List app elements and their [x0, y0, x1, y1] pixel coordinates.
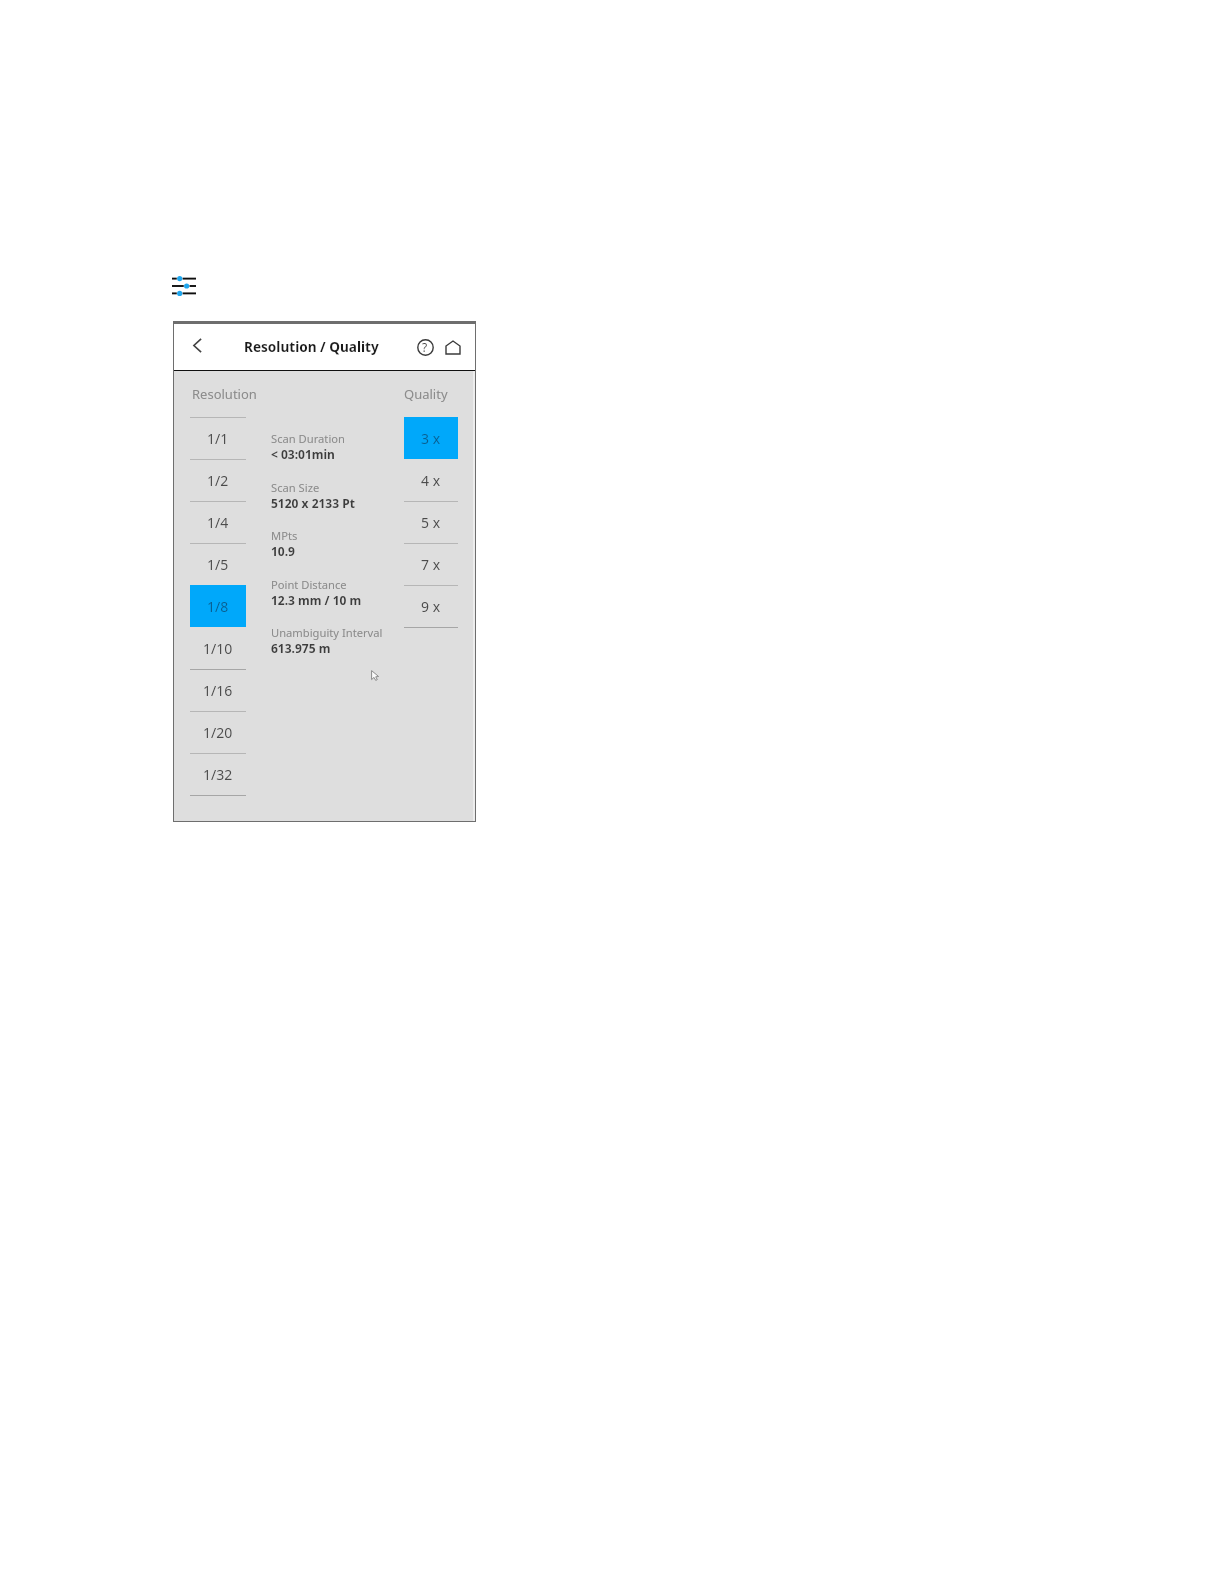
staticText: 5 x [421, 513, 441, 532]
staticText: 1/16 [203, 681, 233, 700]
staticText: 1/10 [203, 639, 233, 658]
staticText: MPts [271, 528, 298, 543]
staticText: 1/8 [207, 597, 229, 616]
button[interactable]: 1/5 [190, 543, 246, 585]
button[interactable]: Help [412, 334, 438, 360]
staticText: 10.9 [271, 543, 295, 559]
staticText: 1/2 [207, 471, 229, 490]
button[interactable]: 7 x [404, 543, 458, 585]
staticText: 1/5 [207, 555, 229, 574]
staticText: 12.3 mm / 10 m [271, 592, 362, 608]
staticText: 613.975 m [271, 640, 331, 656]
staticText: 9 x [421, 597, 441, 616]
button[interactable]: 4 x [404, 459, 458, 501]
button[interactable]: Home [440, 334, 466, 360]
button[interactable]: 1/2 [190, 459, 246, 501]
staticText: 4 x [421, 471, 441, 490]
button[interactable]: Back [180, 331, 212, 363]
staticText: 3 x [421, 429, 441, 448]
button[interactable]: 1/32 [190, 753, 246, 795]
button[interactable]: 3 x [404, 417, 458, 459]
button[interactable]: 1/8 [190, 585, 246, 627]
button[interactable]: Adjust settings [172, 277, 196, 295]
staticText: ? [422, 339, 428, 355]
button[interactable]: 1/20 [190, 711, 246, 753]
staticText: Scan Size [271, 480, 320, 495]
staticText: Resolution / Quality [244, 337, 379, 356]
staticText: < 03:01min [271, 446, 335, 462]
staticText: 5120 x 2133 Pt [271, 495, 355, 511]
button[interactable]: 5 x [404, 501, 458, 543]
staticText: 1/32 [203, 765, 233, 784]
staticText: Resolution [192, 385, 257, 403]
staticText: Point Distance [271, 577, 347, 592]
button[interactable]: 1/4 [190, 501, 246, 543]
staticText: 1/4 [207, 513, 229, 532]
button[interactable]: 1/10 [190, 627, 246, 669]
staticText: Unambiguity Interval [271, 625, 383, 640]
staticText: 1/1 [207, 429, 229, 448]
staticText: 7 x [421, 555, 441, 574]
staticText: 1/20 [203, 723, 233, 742]
staticText: Scan Duration [271, 431, 345, 446]
button[interactable]: 1/1 [190, 417, 246, 459]
button[interactable]: 1/16 [190, 669, 246, 711]
staticText: Quality [404, 385, 448, 403]
button[interactable]: 9 x [404, 585, 458, 627]
